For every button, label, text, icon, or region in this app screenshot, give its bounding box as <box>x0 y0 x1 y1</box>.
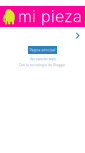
staticText: mi pieza <box>18 7 82 26</box>
button[interactable]: mi pieza <box>0 6 85 27</box>
staticText: Ver versión web <box>29 57 55 61</box>
button[interactable]: Next <box>0 30 85 42</box>
button[interactable]: Ver versión web <box>29 57 55 61</box>
button[interactable]: Página principal <box>28 46 57 54</box>
staticText: Con la tecnología de Blogger. <box>19 63 66 67</box>
staticText: Página principal <box>29 48 55 52</box>
